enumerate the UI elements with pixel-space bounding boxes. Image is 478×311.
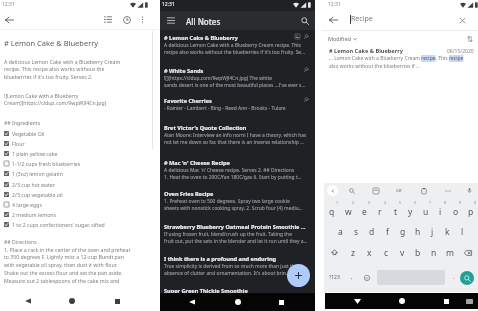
button[interactable]: 1 (3oz) lemon gelatin: [4, 168, 154, 178]
button[interactable]: v: [394, 242, 410, 263]
button[interactable]: Clear search: [453, 11, 471, 29]
button[interactable]: ?123: [324, 263, 344, 292]
button[interactable]: f: [380, 221, 395, 242]
button[interactable]: 2/3 cup vegetable oil: [4, 189, 154, 199]
button[interactable]: Menu: [162, 11, 180, 30]
staticText: 2/3 cup hot water: [12, 181, 55, 188]
button[interactable]: More keyboard options: [442, 185, 453, 196]
button[interactable]: Strawberry Blueberry Oatmeal Protein Smo…: [160, 219, 315, 252]
button[interactable]: Search: [460, 271, 474, 285]
button[interactable]: Recents: [271, 293, 292, 311]
button[interactable]: g: [395, 221, 410, 242]
button[interactable]: Emoji: [359, 263, 374, 292]
button[interactable]: r: [372, 198, 388, 221]
button[interactable]: 1 to 2 cups confectioners' sugar, sifted: [4, 219, 154, 229]
button[interactable]: Clipboard: [418, 185, 429, 196]
button[interactable]: i: [433, 198, 448, 221]
button[interactable]: m: [442, 242, 458, 263]
staticText: j: [431, 226, 434, 238]
button[interactable]: Hide keyboard: [347, 293, 367, 309]
button[interactable]: c: [378, 242, 394, 263]
button[interactable]: Home: [392, 293, 412, 309]
button[interactable]: Back: [181, 293, 202, 311]
button[interactable]: 2/3 cup hot water: [4, 179, 154, 189]
button[interactable]: p: [463, 198, 478, 221]
staticText: u: [423, 206, 429, 218]
button[interactable]: More options: [134, 11, 150, 28]
button[interactable]: 1-1/2 cups fresh blueberries: [4, 158, 154, 168]
button[interactable]: Home: [61, 294, 82, 308]
staticText: 1: [336, 200, 339, 205]
staticText: w: [345, 206, 352, 218]
staticText: Flour: [12, 140, 25, 147]
staticText: 1-1/2 cups fresh blueberries: [12, 160, 81, 167]
button[interactable]: GIF: [394, 185, 405, 196]
staticText: 2/3 cup vegetable oil: [12, 191, 63, 198]
button[interactable]: Favorite Cherries: [160, 93, 315, 120]
staticText: g: [400, 226, 406, 238]
staticText: a: [338, 226, 343, 238]
button[interactable]: Shift: [324, 242, 344, 263]
button[interactable]: l: [455, 221, 470, 242]
button[interactable]: t: [388, 198, 403, 221]
staticText: 4: [384, 200, 387, 205]
button[interactable]: e: [356, 198, 372, 221]
button[interactable]: # White Sands: [160, 63, 315, 96]
button[interactable]: # Mac 'n' Cheese Recipe: [160, 155, 315, 188]
button[interactable]: b: [410, 242, 426, 263]
button[interactable]: x: [361, 242, 378, 263]
button[interactable]: # Lemon Cake & Blueberry: [160, 30, 315, 63]
button[interactable]: h: [410, 221, 425, 242]
button[interactable]: 4 large eggs: [4, 199, 154, 209]
button[interactable]: Formatting: [99, 11, 116, 28]
button[interactable]: Search: [346, 185, 357, 196]
staticText: ## Directions: [4, 238, 37, 245]
button[interactable]: Switch keyboard: [459, 293, 478, 309]
staticText: 5: [399, 200, 402, 205]
button[interactable]: z: [344, 242, 361, 263]
button[interactable]: o: [448, 198, 463, 221]
button[interactable]: n: [426, 242, 442, 263]
button[interactable]: Back: [324, 11, 342, 29]
button[interactable]: j: [425, 221, 440, 242]
button[interactable]: Recents: [436, 293, 456, 309]
button[interactable]: d: [364, 221, 380, 242]
button[interactable]: Expand toolbar: [327, 185, 338, 196]
button[interactable]: Search: [296, 11, 313, 30]
button[interactable]: s: [348, 221, 364, 242]
button[interactable]: Recents: [107, 294, 128, 308]
button[interactable]: Backspace: [458, 242, 478, 263]
button[interactable]: Voice input: [464, 185, 475, 196]
button[interactable]: Stickers: [370, 185, 381, 196]
button[interactable]: 2 medium lemons: [4, 209, 154, 219]
button[interactable]: # Lemon Cake & Blueberry: [322, 47, 478, 73]
button[interactable]: Super Green Thickie Smoothie: [160, 283, 315, 297]
staticText: 1 to 2 cups confectioners' sugar, sifted: [12, 221, 105, 228]
button[interactable]: 1 plain yellow cake: [4, 148, 154, 158]
button[interactable]: k: [440, 221, 455, 242]
button[interactable]: History: [118, 11, 135, 28]
button[interactable]: Bret Victor's Quote Collection: [160, 120, 315, 153]
button[interactable]: Modified: [328, 35, 357, 42]
button[interactable]: New note: [287, 264, 310, 287]
staticText: 2: [352, 200, 355, 205]
button[interactable]: q: [324, 198, 340, 221]
button[interactable]: Back: [17, 294, 38, 308]
button[interactable]: w: [340, 198, 356, 221]
button[interactable]: y: [403, 198, 418, 221]
button[interactable]: Oven Fries Recipe: [160, 186, 315, 219]
button[interactable]: I think there is a profound and enduring: [160, 251, 315, 284]
staticText: A delicious Mac 'n' Cheese recipe. Serve…: [164, 167, 308, 181]
button[interactable]: Sort order: [463, 32, 476, 45]
button[interactable]: Vegetable Oil: [4, 128, 154, 138]
button[interactable]: Home: [227, 293, 248, 311]
button[interactable]: ,: [344, 263, 359, 292]
button[interactable]: Back: [0, 11, 18, 28]
button[interactable]: a: [332, 221, 348, 242]
button[interactable]: Flour: [4, 138, 154, 148]
staticText: m: [446, 247, 454, 259]
staticText: # White Sands: [164, 67, 290, 75]
button[interactable]: u: [418, 198, 433, 221]
